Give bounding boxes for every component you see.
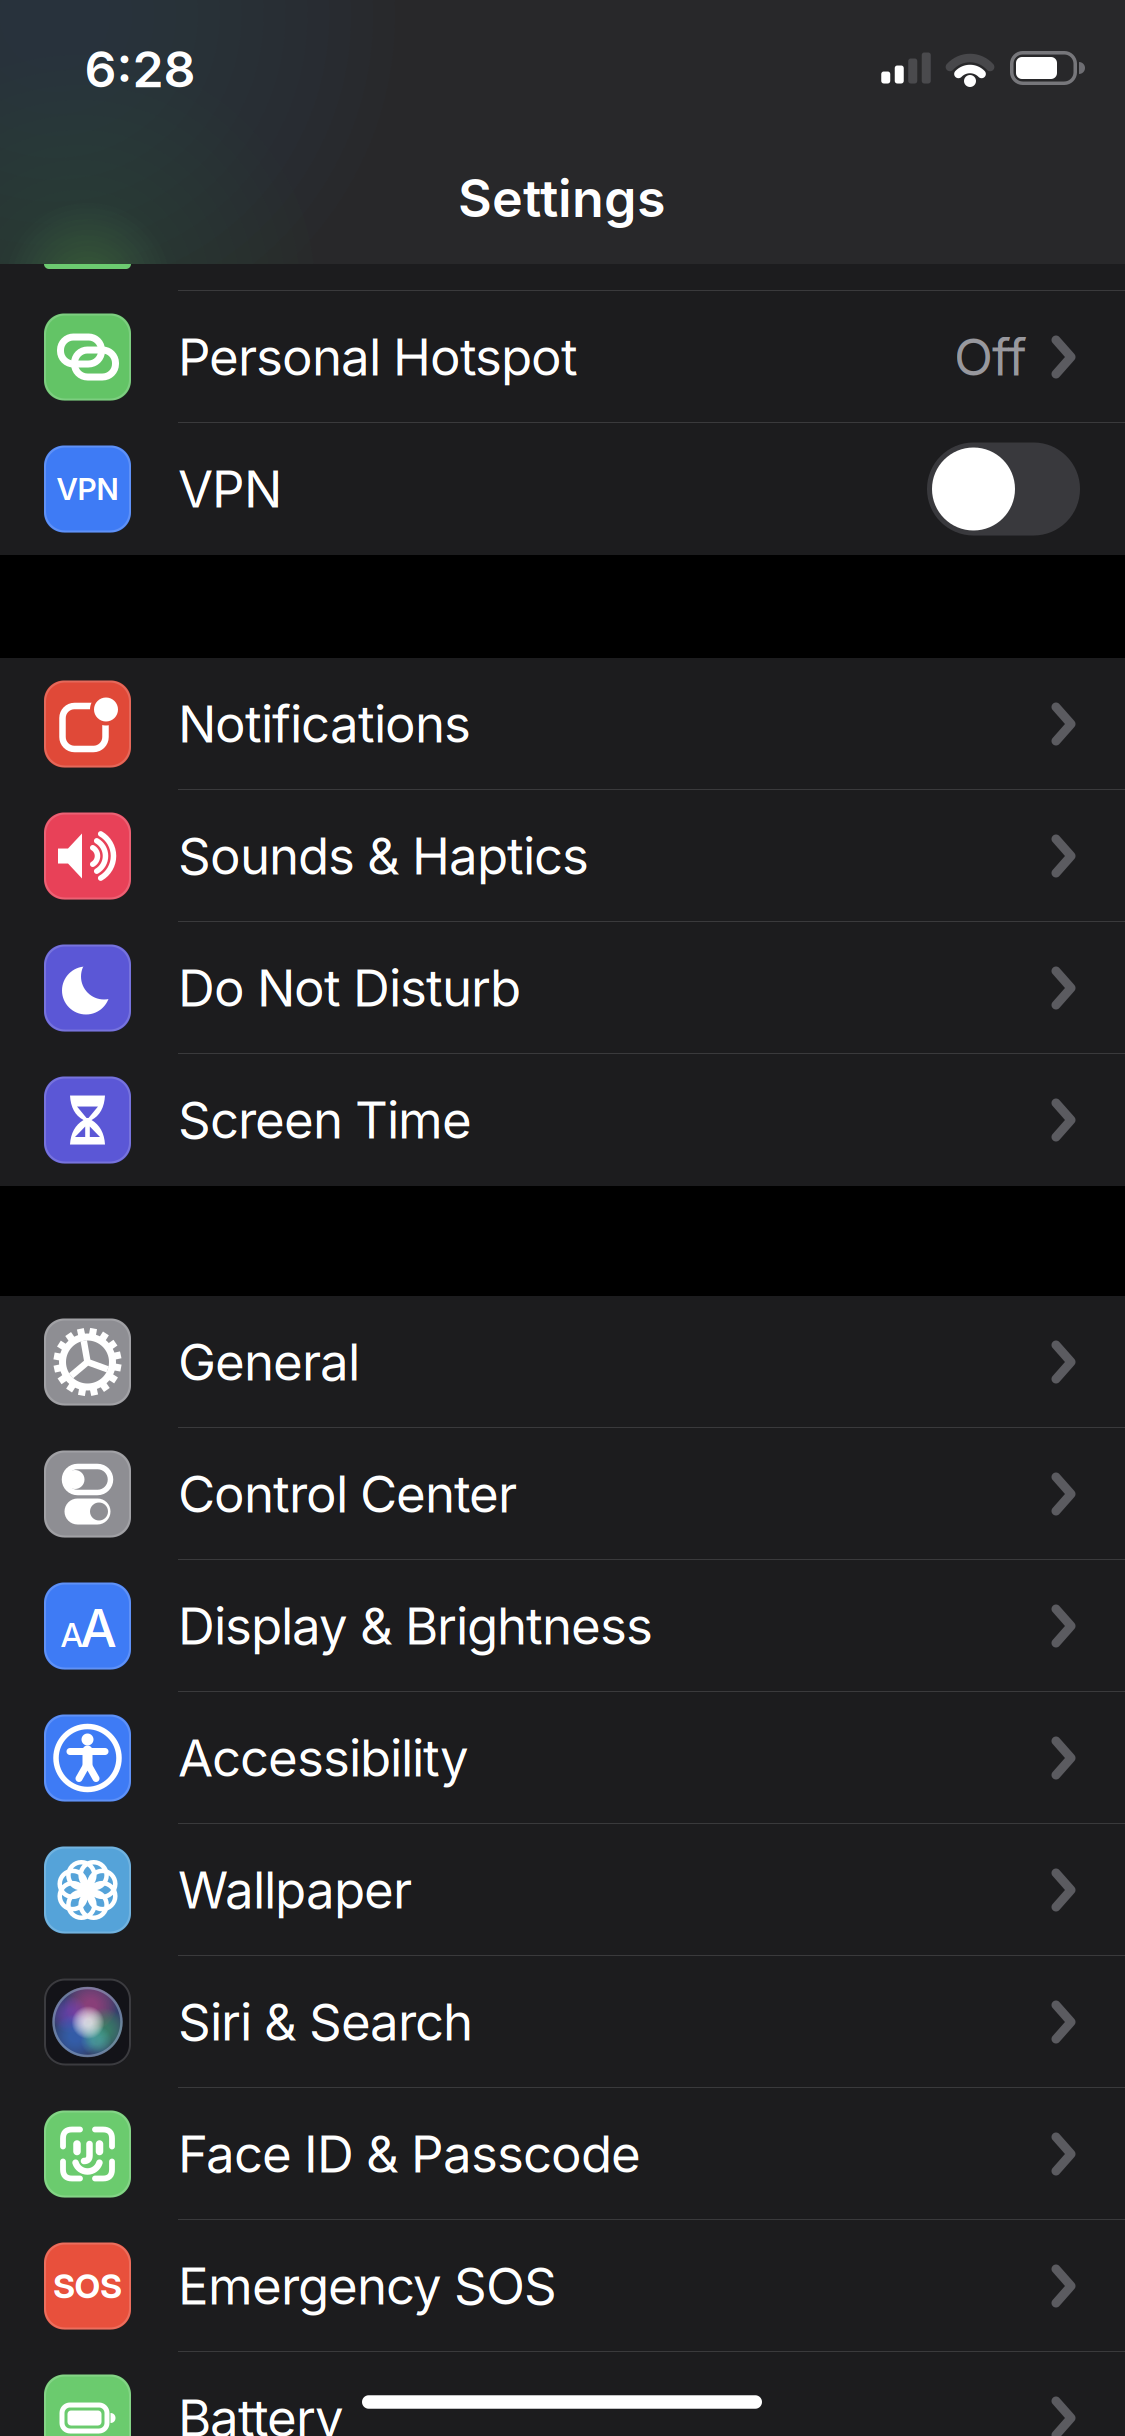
button[interactable]: Screen Time [0, 1054, 1125, 1186]
staticText: Battery [178, 2387, 344, 2436]
button[interactable]: Sounds & Haptics [0, 790, 1125, 922]
staticText: Sounds & Haptics [178, 825, 589, 887]
staticText: 6:28 [84, 39, 195, 99]
button[interactable]: Notifications [0, 658, 1125, 790]
staticText: Emergency SOS [178, 2255, 557, 2317]
button[interactable]: A [0, 1560, 1125, 1692]
button[interactable]: Mobile Data [0, 264, 1125, 291]
button[interactable]: Personal Hotspot [0, 291, 1125, 423]
button[interactable]: Siri & Search [0, 1956, 1125, 2088]
button[interactable]: VPN [0, 423, 1125, 555]
staticText: Off [954, 326, 1027, 388]
staticText: Settings [458, 166, 666, 229]
staticText: SOS [53, 2265, 122, 2306]
staticText: VPN [178, 458, 282, 520]
staticText: A [60, 1615, 83, 1655]
staticText: VPN [56, 471, 118, 507]
button[interactable]: SOS [0, 2220, 1125, 2352]
button[interactable]: Do Not Disturb [0, 922, 1125, 1054]
button[interactable]: Battery [0, 2352, 1125, 2436]
button[interactable]: Face ID & Passcode [0, 2088, 1125, 2220]
staticText: Wallpaper [178, 1859, 412, 1921]
button[interactable]: General [0, 1296, 1125, 1428]
button[interactable]: Wallpaper [0, 1824, 1125, 1956]
staticText: Notifications [178, 693, 471, 755]
button[interactable]: Accessibility [0, 1692, 1125, 1824]
staticText: Accessibility [178, 1727, 469, 1789]
staticText: A [80, 1596, 117, 1659]
staticText: Siri & Search [178, 1991, 473, 2053]
staticText: Face ID & Passcode [178, 2123, 641, 2185]
staticText: Control Center [178, 1463, 517, 1525]
staticText: Display & Brightness [178, 1595, 653, 1657]
button[interactable]: Control Center [0, 1428, 1125, 1560]
staticText: Personal Hotspot [178, 326, 578, 388]
staticText: Screen Time [178, 1089, 472, 1151]
staticText: General [178, 1331, 360, 1393]
staticText: Do Not Disturb [178, 957, 521, 1019]
